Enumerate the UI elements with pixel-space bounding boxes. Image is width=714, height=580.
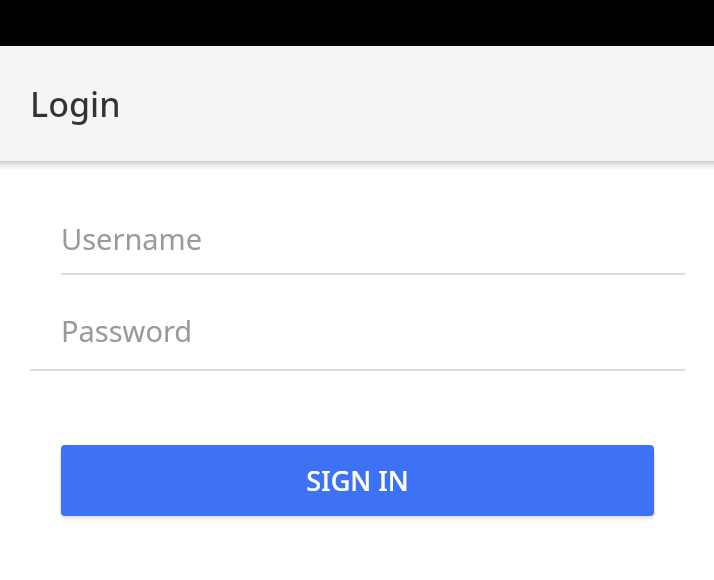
button[interactable]: Username [61,219,203,258]
button[interactable]: SIGN IN [61,445,654,516]
staticText: Login [30,81,121,127]
staticText: SIGN IN [306,462,409,499]
button[interactable]: Password [61,311,193,350]
